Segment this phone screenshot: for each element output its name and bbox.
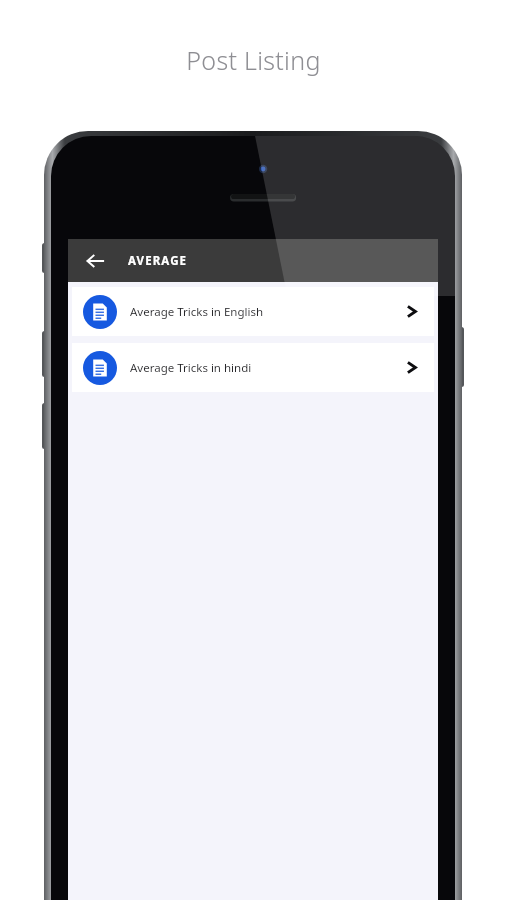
button[interactable]: Average Tricks in English <box>72 287 434 336</box>
staticText: Post Listing <box>186 43 321 77</box>
button[interactable]: Back <box>80 246 110 276</box>
staticText: AVERAGE <box>128 253 188 269</box>
staticText: Average Tricks in English <box>130 304 404 320</box>
button[interactable]: Average Tricks in hindi <box>72 343 434 392</box>
staticText: Average Tricks in hindi <box>130 360 404 376</box>
